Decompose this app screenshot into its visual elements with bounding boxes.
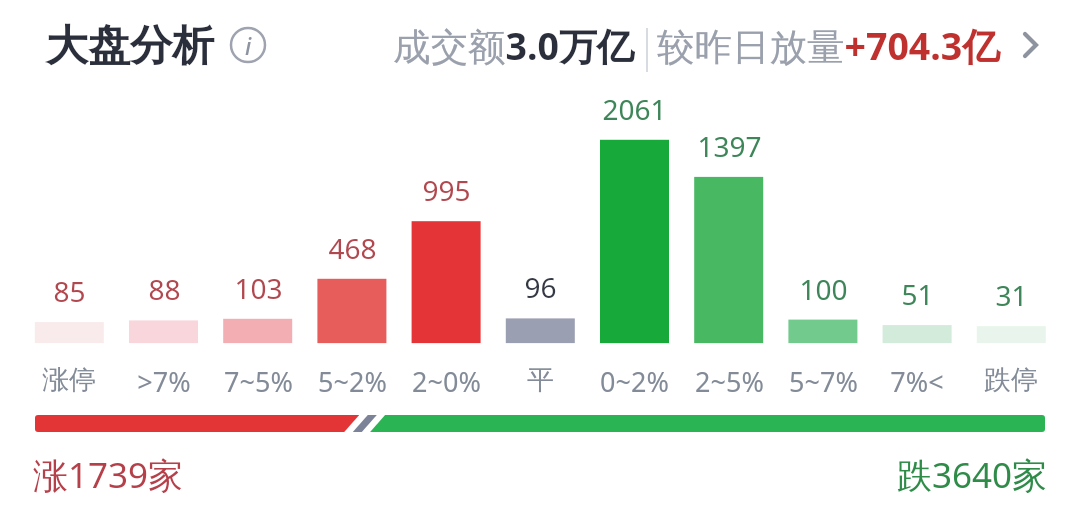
staticText: 100 (799, 270, 848, 302)
staticText: 0~2% (600, 363, 669, 395)
button[interactable]: 成交额3.0万亿 (393, 17, 1039, 73)
staticText: >7% (137, 363, 191, 395)
button[interactable]: 468 (297, 95, 407, 395)
button[interactable]: 103 (203, 95, 313, 395)
staticText: 7%< (890, 363, 944, 395)
staticText: 96 (524, 268, 557, 300)
staticText: 85 (53, 272, 86, 304)
button[interactable]: 100 (768, 95, 878, 395)
other: About market breadth (230, 27, 266, 63)
staticText: 468 (328, 229, 377, 261)
staticText: 较昨日放量+704.3亿 (657, 20, 1000, 71)
staticText: 88 (148, 270, 181, 302)
staticText: 31 (995, 276, 1028, 308)
staticText: 2~5% (695, 363, 764, 395)
button[interactable]: 2061 (579, 95, 689, 395)
staticText: 1397 (697, 127, 762, 159)
staticText: 2~0% (412, 363, 481, 395)
staticText: 大盘分析 (46, 20, 214, 73)
staticText: 跌3640家 (897, 451, 1048, 499)
staticText: 5~7% (789, 363, 858, 395)
staticText: 5~2% (318, 363, 387, 395)
staticText: 涨停 (42, 363, 96, 395)
staticText: 51 (901, 275, 934, 307)
button[interactable]: 995 (391, 95, 501, 395)
staticText: 103 (234, 269, 283, 301)
button[interactable]: 96 (485, 95, 595, 395)
button[interactable]: 涨1739家 (33, 451, 184, 499)
staticText: 跌停 (984, 363, 1038, 395)
button[interactable]: 1397 (674, 95, 784, 395)
other: Open details (1023, 32, 1039, 58)
button[interactable]: 大盘分析 (46, 20, 266, 73)
staticText: 成交额3.0万亿 (393, 20, 634, 71)
button[interactable]: 跌3640家 (897, 451, 1048, 499)
staticText: 涨1739家 (33, 451, 184, 499)
staticText: 995 (422, 171, 471, 203)
staticText: 平 (527, 363, 554, 395)
button[interactable]: 85 (14, 95, 124, 395)
staticText: 7~5% (224, 363, 293, 395)
button[interactable]: 51 (862, 95, 972, 395)
button[interactable]: 31 (956, 95, 1066, 395)
button[interactable]: 88 (109, 95, 219, 395)
staticText: 2061 (602, 90, 667, 122)
staticText: i (245, 30, 252, 61)
